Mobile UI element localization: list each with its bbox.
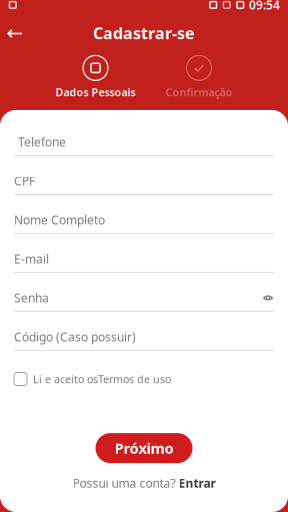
- button[interactable]: Possui uma conta?: [62, 471, 225, 495]
- staticText: Cadastrar-se: [93, 22, 195, 43]
- staticText: CPF: [14, 173, 35, 189]
- staticText: Senha: [14, 290, 49, 306]
- staticText: Dados Pessoais: [55, 85, 135, 99]
- staticText: ←: [6, 22, 23, 44]
- staticText: Nome Completo: [14, 212, 105, 228]
- staticText: Código (Caso possuir): [14, 329, 136, 345]
- button[interactable]: Senha: [0, 279, 288, 318]
- staticText: Confirmação: [165, 85, 232, 99]
- button[interactable]: Nome Completo: [0, 201, 288, 240]
- button[interactable]: CPF: [0, 162, 288, 201]
- staticText: Telefone: [18, 134, 66, 150]
- staticText: Próximo: [114, 438, 173, 458]
- staticText: Li e aceito os: [33, 372, 98, 386]
- staticText: E-mail: [14, 251, 49, 267]
- button[interactable]: Próximo: [95, 433, 192, 463]
- staticText: Termos de uso: [98, 372, 171, 386]
- staticText: Possui uma conta?: [72, 475, 178, 491]
- staticText: Entrar: [178, 475, 215, 491]
- button[interactable]: Li e aceito os: [14, 369, 171, 389]
- button[interactable]: E-mail: [0, 240, 288, 279]
- staticText: 09:54: [249, 0, 280, 13]
- button[interactable]: Código (Caso possuir): [0, 318, 288, 357]
- button[interactable]: Telefone: [0, 123, 288, 162]
- button[interactable]: Voltar: [0, 20, 30, 46]
